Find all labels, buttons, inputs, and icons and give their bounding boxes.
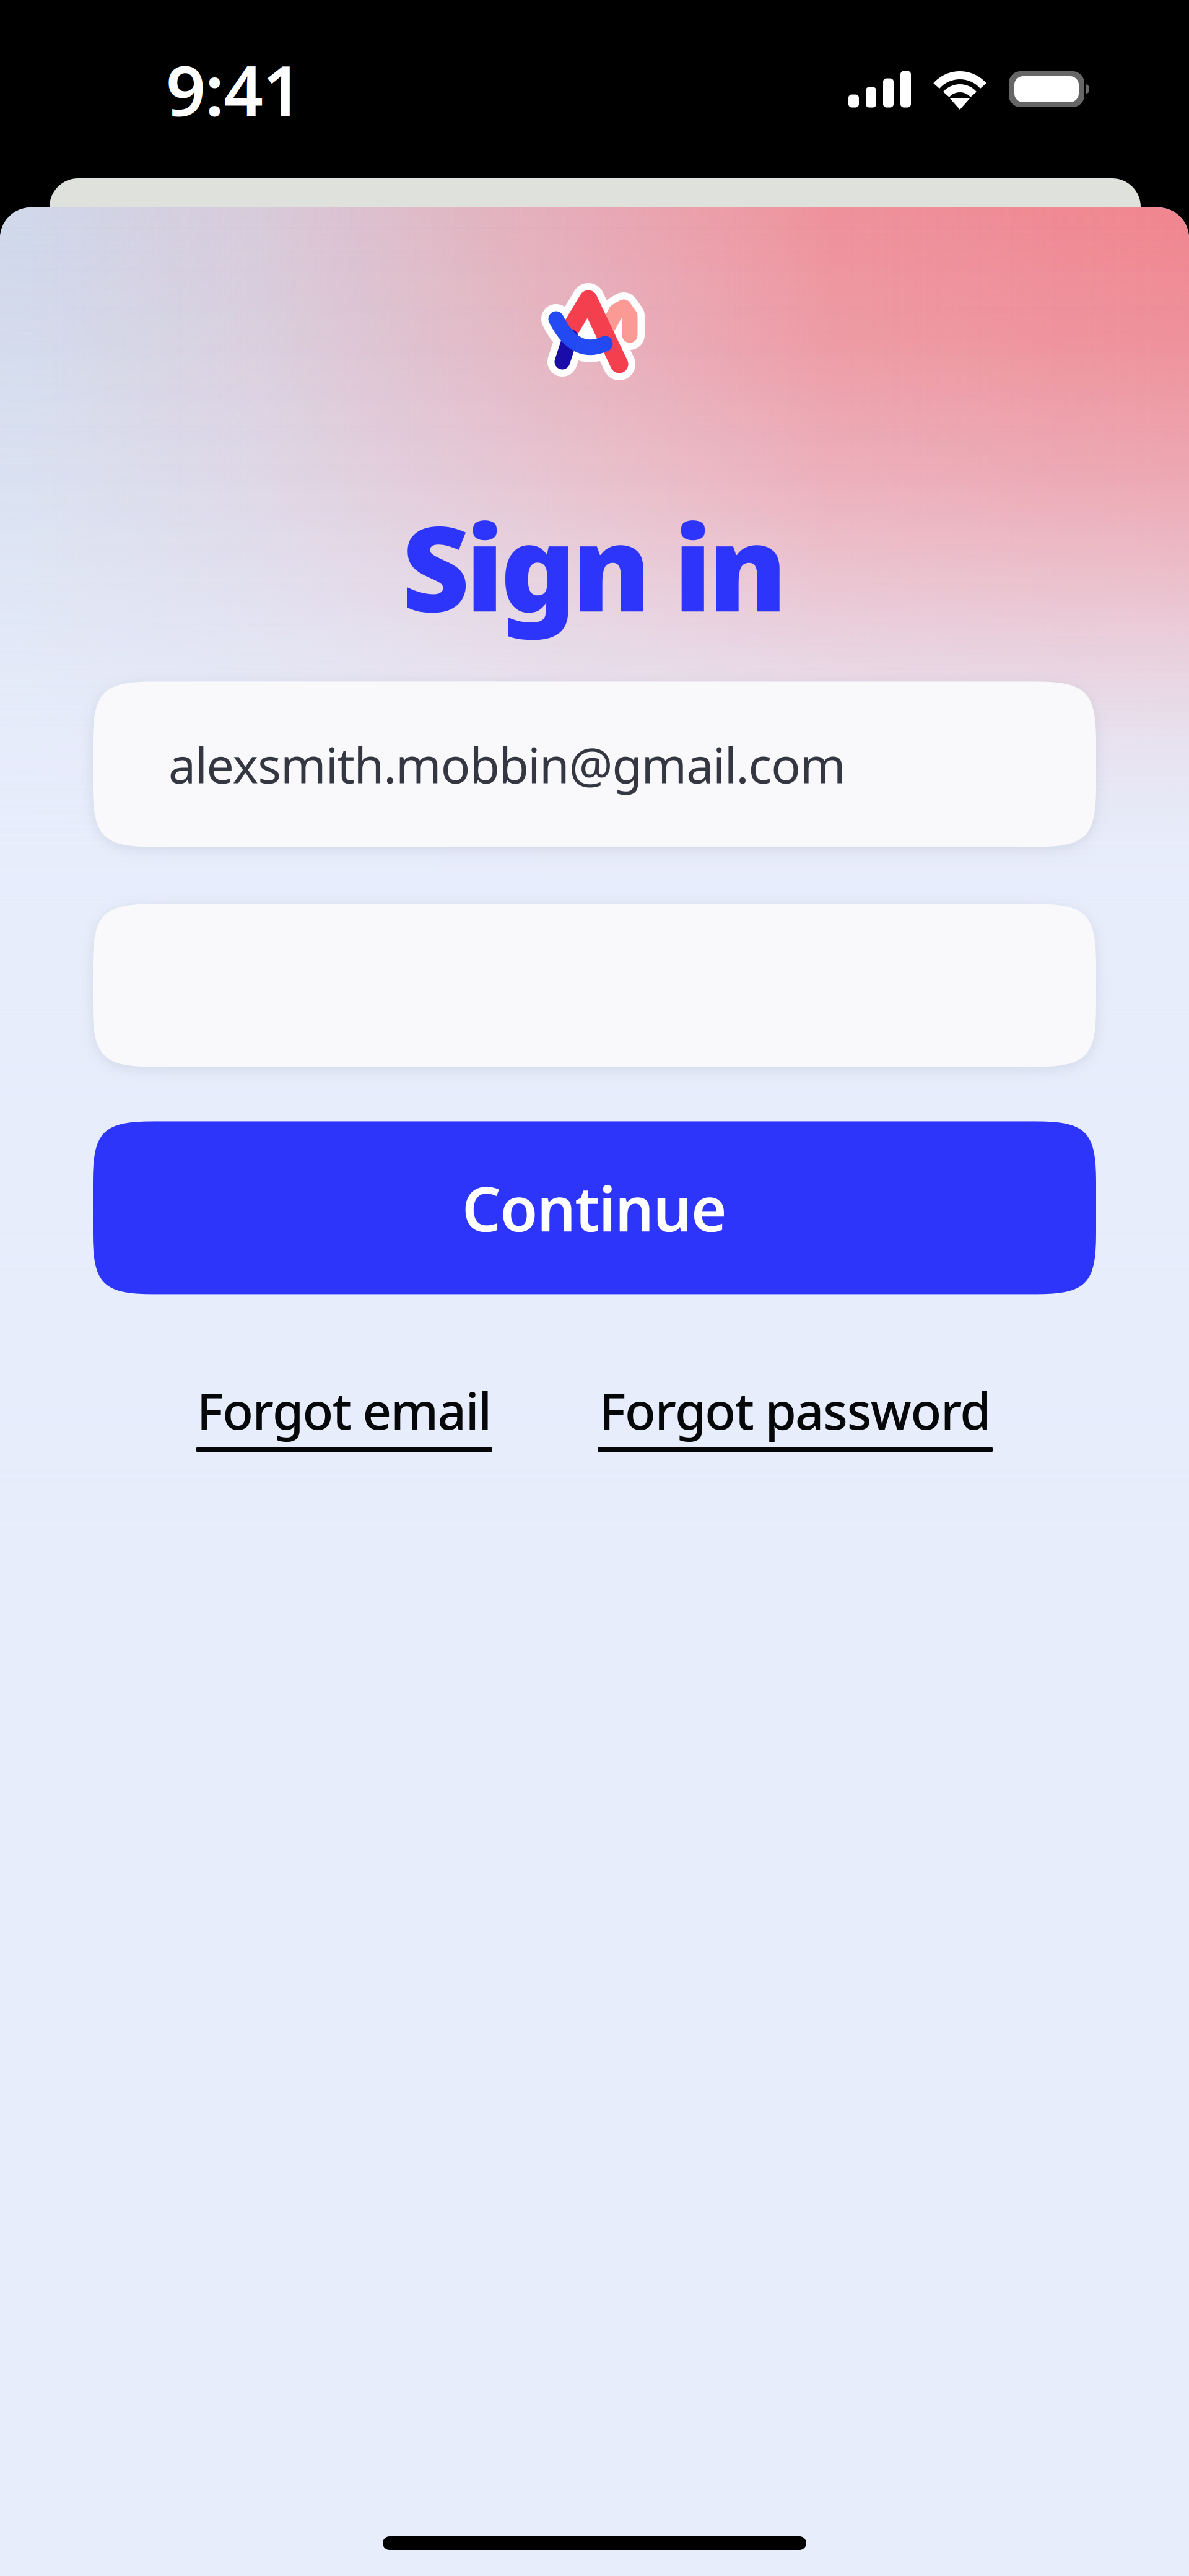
staticText: Forgot email [197,1377,492,1443]
button[interactable]: Forgot password [598,1367,993,1462]
button[interactable]: alexsmith.mobbin@gmail.com [0,682,1189,847]
staticText: 9:41 [166,43,302,135]
staticText: Forgot password [599,1377,991,1443]
button[interactable]: Forgot email [196,1367,492,1462]
button[interactable]: Continue [0,1121,1189,1294]
staticText: Continue [462,1167,727,1248]
staticText: alexsmith.mobbin@gmail.com [168,732,846,797]
staticText: Sign in [402,488,787,644]
button[interactable]: Password [0,904,1189,1067]
